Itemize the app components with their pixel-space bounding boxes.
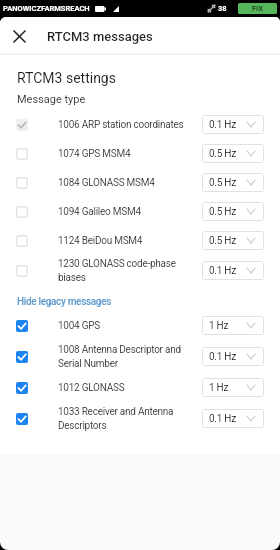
button[interactable]: 1 Hz [202, 378, 264, 397]
staticText: 1012 GLONASS [58, 382, 125, 394]
staticText: Message type [17, 93, 86, 106]
staticText: 0.5 Hz [209, 206, 236, 218]
button[interactable]: 1094 Galileo MSM4 [0, 197, 280, 226]
staticText: RTCM3 settings [17, 70, 116, 86]
button[interactable]: 0.1 Hz [202, 115, 264, 134]
button[interactable]: 1008 Antenna Descriptor and Serial Numbe… [0, 341, 280, 372]
button[interactable]: 1 Hz [202, 316, 264, 335]
staticText: 0.5 Hz [209, 235, 236, 247]
button[interactable]: Close [0, 17, 38, 55]
staticText: 0.5 Hz [209, 177, 236, 189]
staticText: 1 Hz [209, 382, 229, 394]
staticText: 38 [218, 4, 227, 13]
staticText: 0.1 Hz [209, 413, 236, 425]
staticText: 1230 GLONASS code-phase biases [58, 258, 195, 283]
staticText: 1084 GLONASS MSM4 [58, 177, 155, 189]
button[interactable]: 0.1 Hz [202, 409, 264, 428]
staticText: FIX [252, 4, 264, 13]
button[interactable]: 1012 GLONASS [0, 372, 280, 403]
staticText: PANOWICZFARMSREACH [3, 4, 90, 13]
button[interactable]: 0.5 Hz [202, 202, 264, 221]
staticText: 1124 BeiDou MSM4 [58, 235, 143, 247]
other: Satellites [207, 4, 216, 13]
staticText: 1 Hz [209, 320, 229, 332]
button[interactable]: 0.5 Hz [202, 231, 264, 250]
staticText: 0.1 Hz [209, 351, 236, 363]
staticText: 1094 Galileo MSM4 [58, 206, 141, 218]
staticText: 1074 GPS MSM4 [58, 148, 131, 160]
button[interactable]: 1074 GPS MSM4 [0, 139, 280, 168]
staticText: 1006 ARP station coordinates [58, 119, 184, 131]
button[interactable]: 1124 BeiDou MSM4 [0, 226, 280, 255]
staticText: 1033 Receiver and Antenna Descriptors [58, 406, 195, 431]
staticText: 0.1 Hz [209, 119, 236, 131]
button[interactable]: 0.5 Hz [202, 173, 264, 192]
button[interactable]: 1230 GLONASS code-phase biases [0, 255, 280, 286]
button[interactable]: 0.1 Hz [202, 261, 264, 280]
staticText: 1008 Antenna Descriptor and Serial Numbe… [58, 344, 195, 369]
staticText: 1004 GPS [58, 320, 101, 332]
staticText: 0.1 Hz [209, 265, 236, 277]
button[interactable]: 1004 GPS [0, 310, 280, 341]
staticText: Hide legacy messages [17, 296, 112, 308]
button[interactable]: 1033 Receiver and Antenna Descriptors [0, 403, 280, 434]
button[interactable]: Hide legacy messages [0, 296, 120, 308]
button[interactable]: 0.1 Hz [202, 347, 264, 366]
button[interactable]: 0.5 Hz [202, 144, 264, 163]
staticText: RTCM3 messages [47, 29, 153, 44]
staticText: 0.5 Hz [209, 148, 236, 160]
button[interactable]: 1084 GLONASS MSM4 [0, 168, 280, 197]
button[interactable]: 1006 ARP station coordinates [0, 110, 280, 139]
